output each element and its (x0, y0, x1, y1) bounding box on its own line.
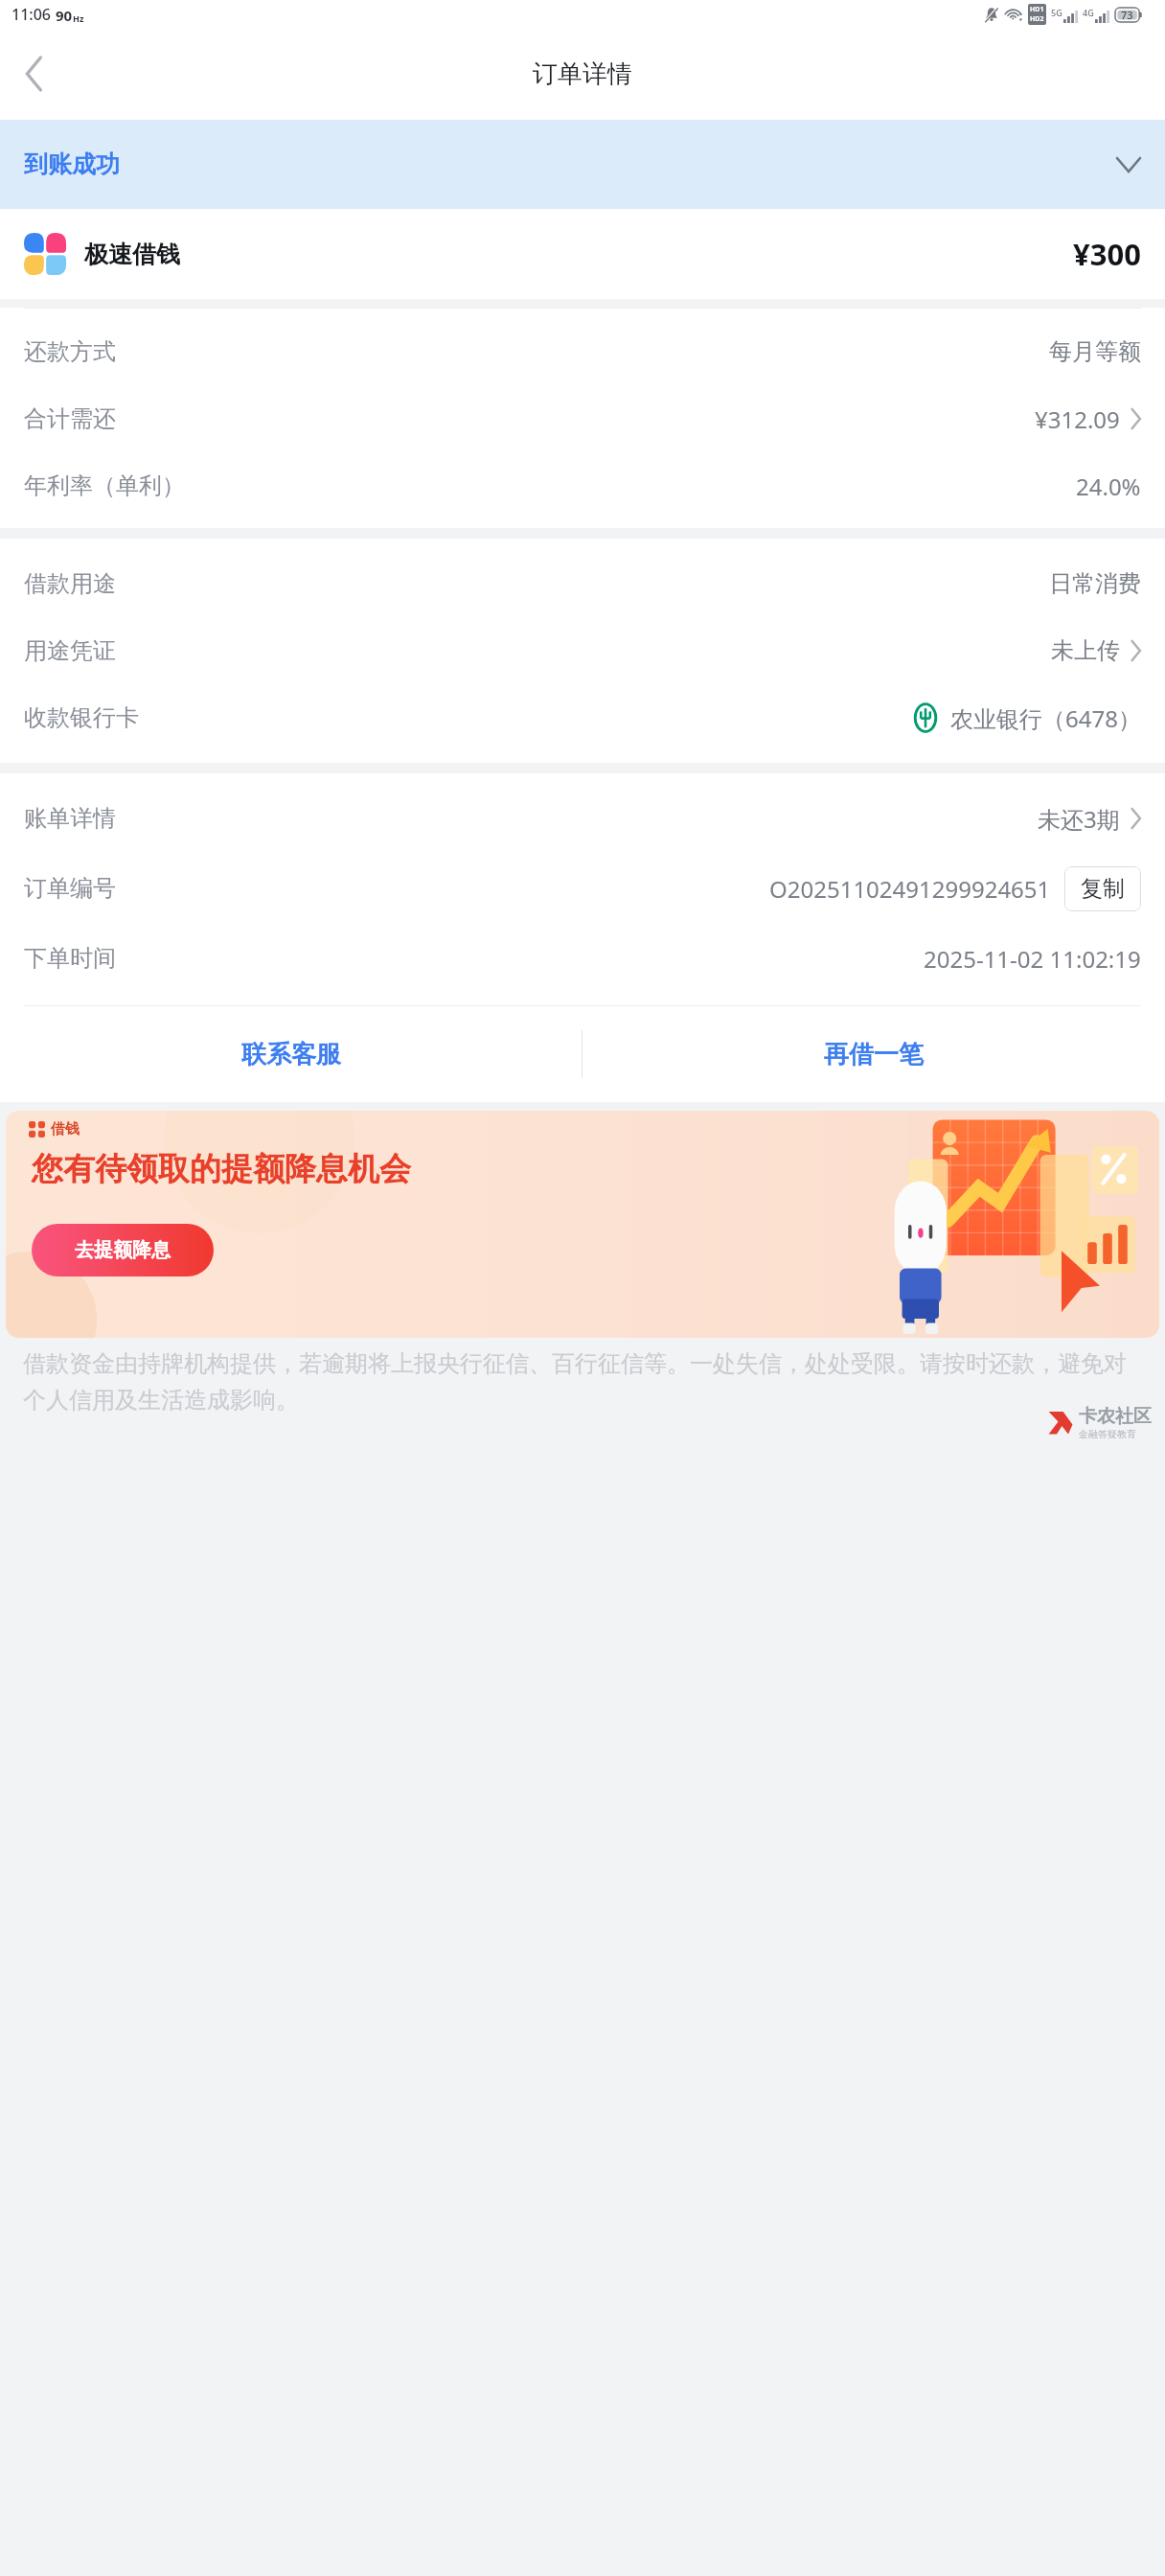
staticText: Hz (73, 12, 84, 24)
staticText: 73 (1121, 8, 1133, 22)
staticText: 5G (1051, 7, 1062, 18)
staticText: 卡农社区 (1079, 1405, 1152, 1428)
staticText: 到账成功 (24, 149, 120, 179)
staticText: 90 (56, 6, 73, 25)
staticText: 金融答疑教育 (1079, 1428, 1136, 1440)
staticText: 账单详情 (24, 804, 116, 833)
button[interactable]: Back (8, 47, 61, 101)
button[interactable]: 去提额降息 (32, 1224, 214, 1276)
staticText: ¥300 (1073, 234, 1141, 274)
staticText: 去提额降息 (75, 1238, 171, 1262)
staticText: 未上传 (1051, 636, 1120, 665)
button[interactable]: 复制 (1064, 866, 1141, 911)
staticText: 年利率（单利） (24, 471, 185, 500)
staticText: 收款银行卡 (24, 703, 139, 732)
button[interactable]: 到账成功 (0, 120, 1165, 209)
staticText: O20251102491299924651 (769, 873, 1051, 905)
staticText: 借款用途 (24, 569, 116, 598)
staticText: 还款方式 (24, 337, 116, 366)
staticText: 用途凭证 (24, 636, 116, 665)
staticText: 您有待领取的提额降息机会 (32, 1149, 411, 1189)
button[interactable]: 借钱 (6, 1111, 1159, 1338)
staticText: 合计需还 (24, 404, 116, 433)
staticText: 借款资金由持牌机构提供，若逾期将上报央行征信、百行征信等。一处失信，处处受限。请… (23, 1349, 1142, 1415)
button[interactable]: 用途凭证 (0, 617, 1165, 684)
button[interactable]: 联系客服 (0, 1006, 582, 1102)
button[interactable]: 账单详情 (0, 785, 1165, 852)
staticText: 24.0% (1076, 471, 1141, 502)
staticText: 复制 (1081, 875, 1125, 903)
staticText: 每月等额 (1049, 337, 1141, 366)
button[interactable]: 极速借钱 (0, 209, 1165, 299)
staticText: 下单时间 (24, 944, 116, 973)
staticText: 4G (1083, 7, 1094, 18)
staticText: 11:06 (11, 4, 51, 25)
staticText: HD2 (1030, 14, 1044, 24)
staticText: 2025-11-02 11:02:19 (924, 943, 1141, 975)
staticText: 订单详情 (533, 58, 632, 90)
staticText: 联系客服 (241, 1039, 341, 1070)
button[interactable]: 合计需还 (0, 385, 1165, 452)
staticText: 极速借钱 (84, 240, 180, 269)
staticText: 借钱 (51, 1120, 80, 1138)
staticText: HD1 (1030, 5, 1044, 14)
staticText: ¥312.09 (1035, 403, 1120, 435)
button[interactable]: 再借一笔 (582, 1006, 1165, 1102)
staticText: 农业银行（6478） (950, 702, 1141, 734)
staticText: 订单编号 (24, 874, 116, 903)
staticText: 日常消费 (1049, 569, 1141, 598)
staticText: 再借一笔 (824, 1039, 924, 1070)
staticText: 未还3期 (1038, 803, 1120, 835)
